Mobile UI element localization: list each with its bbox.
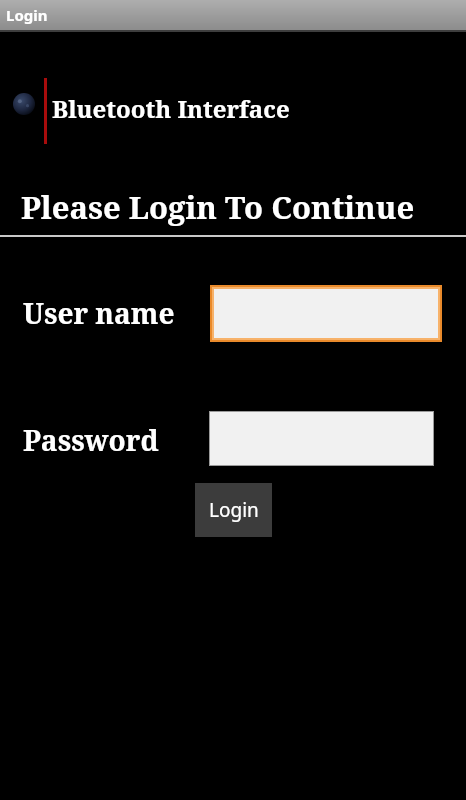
staticText: Login	[209, 497, 259, 523]
staticText: Login	[6, 5, 48, 25]
staticText: User name	[23, 294, 175, 332]
staticText: Bluetooth Interface	[52, 92, 290, 125]
staticText: Password	[23, 421, 159, 459]
button[interactable]: Login	[195, 483, 272, 537]
staticText: Please Login To Continue	[21, 186, 415, 228]
